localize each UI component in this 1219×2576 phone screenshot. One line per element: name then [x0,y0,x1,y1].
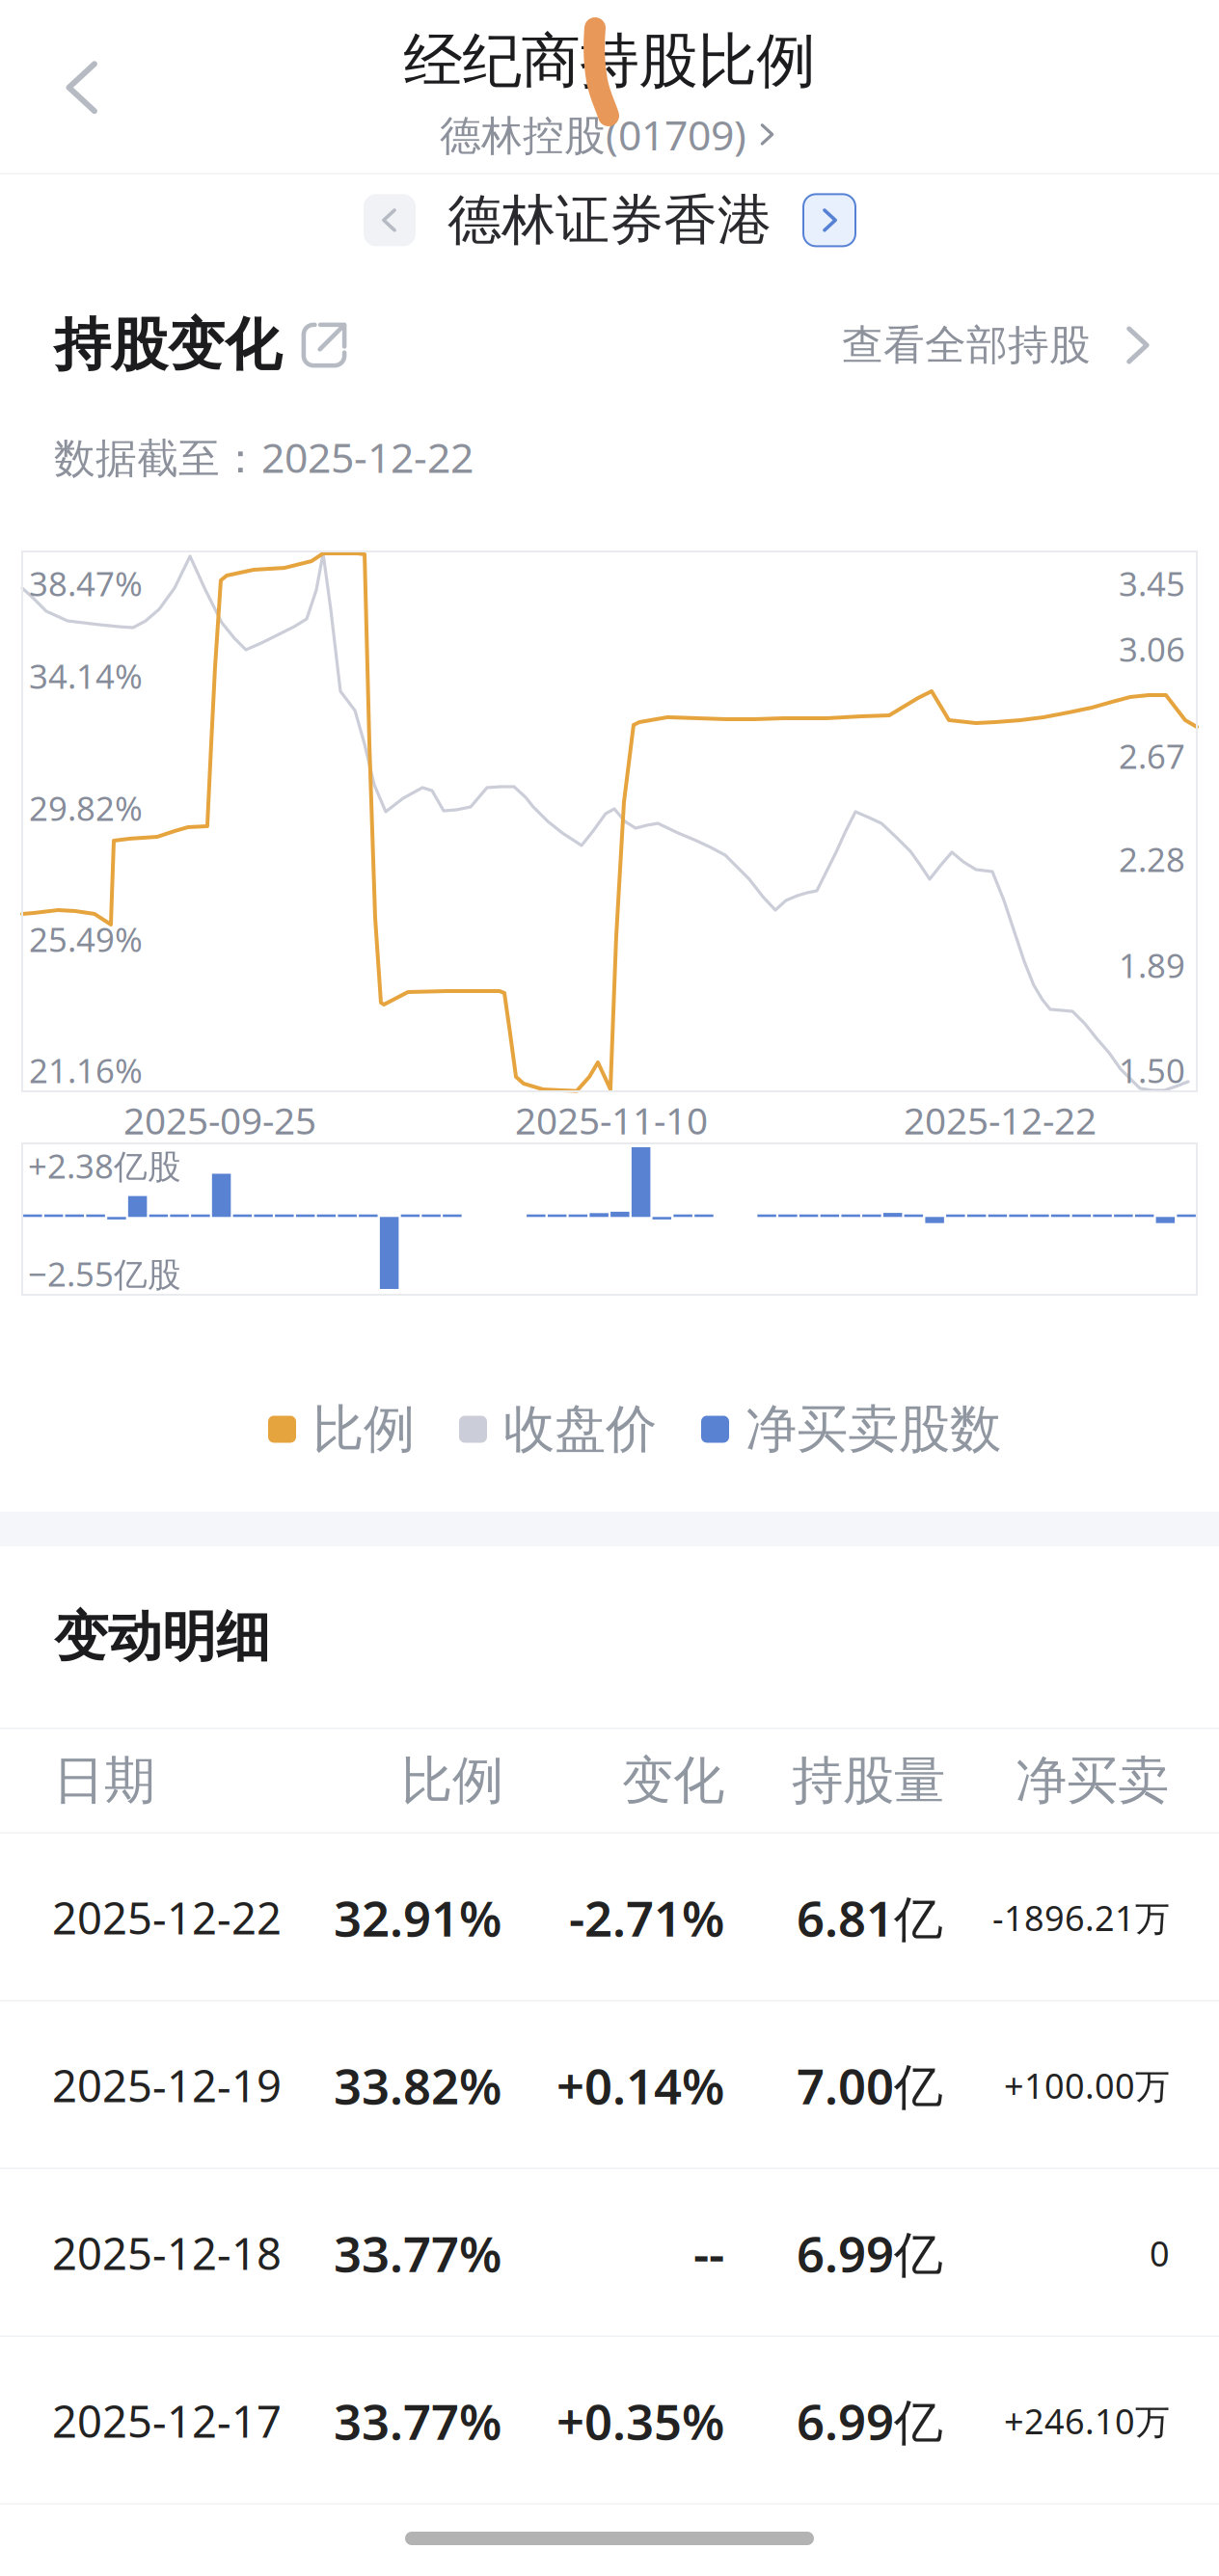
staticText: +0.35% [556,2388,724,2453]
staticText: 日期 [53,1749,155,1812]
button[interactable]: 德林控股(01709) [440,103,779,166]
button[interactable]: Previous broker [364,194,416,246]
staticText: 收盘价 [503,1398,657,1461]
staticText: 29.82% [29,786,143,830]
button[interactable]: 2025-12-19 [0,2001,1219,2169]
staticText: 7.00亿 [797,2053,943,2118]
staticText: 2025-11-10 [515,1095,708,1145]
staticText: 数据截至：2025-12-22 [54,430,474,484]
staticText: -2.71% [569,1885,724,1950]
staticText: -1896.21万 [992,1894,1170,1941]
staticText: 1.50 [1119,1048,1185,1092]
staticText: 2025-12-18 [52,2224,282,2282]
staticText: 比例 [312,1398,415,1461]
staticText: 持股量 [792,1749,945,1812]
staticText: 2025-12-17 [52,2392,282,2450]
staticText: 3.45 [1119,561,1185,605]
staticText: 净买卖 [1016,1749,1169,1812]
staticText: +100.00万 [1004,2062,1170,2108]
staticText: −2.55亿股 [28,1251,181,1296]
button[interactable]: 2025-12-22 [0,1834,1219,2001]
staticText: 2025-12-22 [52,1889,282,1947]
staticText: 38.47% [29,561,143,605]
staticText: 6.99亿 [797,2388,943,2453]
staticText: 33.77% [334,2221,501,2286]
staticText: 3.06 [1119,627,1185,671]
staticText: 0 [1150,2230,1170,2276]
staticText: 持股变化 [54,310,282,380]
staticText: 2025-12-22 [904,1095,1097,1145]
button[interactable]: Open holdings page [282,307,357,384]
staticText: 变化 [622,1749,724,1812]
staticText: 21.16% [29,1048,143,1092]
staticText: 2.67 [1119,734,1185,778]
staticText: 查看全部持股 [842,320,1091,370]
button[interactable]: 2025-12-18 [0,2169,1219,2337]
staticText: 33.82% [334,2053,501,2118]
staticText: 2025-09-25 [123,1095,316,1145]
staticText: +0.14% [556,2053,724,2118]
staticText: 2025-12-19 [52,2056,282,2114]
staticText: 33.77% [334,2388,501,2453]
staticText: +246.10万 [1004,2398,1170,2444]
staticText: 1.89 [1119,943,1185,987]
staticText: 德林证券香港 [447,187,772,253]
staticText: 变动明细 [54,1604,270,1670]
staticText: 34.14% [29,654,143,698]
staticText: 2.28 [1119,837,1185,881]
staticText: 6.99亿 [797,2221,943,2286]
button[interactable]: 2025-12-17 [0,2337,1219,2505]
staticText: 比例 [401,1749,503,1812]
staticText: -- [693,2221,724,2286]
staticText: 经纪商持股比例 [404,25,815,97]
staticText: 32.91% [334,1885,501,1950]
button[interactable]: Next broker [803,194,855,246]
staticText: 6.81亿 [797,1885,943,1950]
staticText: +2.38亿股 [28,1143,181,1188]
button[interactable]: 查看全部持股 [842,307,1159,384]
button[interactable]: Back [11,15,155,160]
staticText: 25.49% [29,917,143,961]
staticText: 德林控股(01709) [440,107,746,162]
staticText: 净买卖股数 [745,1398,1001,1461]
